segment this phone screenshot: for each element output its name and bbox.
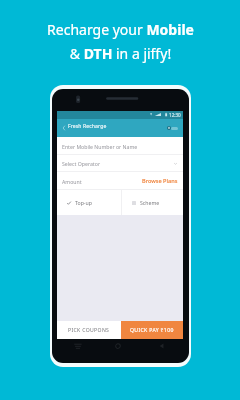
staticText: Scheme bbox=[140, 199, 160, 206]
button[interactable]: Pick contact bbox=[167, 126, 178, 130]
staticText: QUICK PAY ₹100 bbox=[130, 327, 174, 334]
staticText: Browse Plans bbox=[142, 177, 178, 185]
button[interactable]: QUICK PAY ₹100 bbox=[121, 321, 183, 339]
button[interactable]: PICK COUPONS bbox=[57, 321, 121, 339]
staticText: Enter Mobile Number or Name bbox=[62, 143, 138, 150]
staticText: Select Operator bbox=[62, 160, 101, 167]
button[interactable]: Scheme bbox=[122, 190, 183, 215]
staticText: Top-up bbox=[75, 199, 92, 206]
button[interactable]: Top-up bbox=[57, 190, 121, 215]
staticText: 12:30 bbox=[169, 112, 181, 118]
button[interactable]: Enter Mobile Number or Name bbox=[57, 137, 183, 155]
staticText: Fresh Recharge bbox=[68, 123, 107, 130]
staticText: Recharge your Mobile & DTH in a jiffy! bbox=[47, 20, 194, 63]
button[interactable]: Back bbox=[61, 122, 67, 134]
staticText: Amount bbox=[62, 178, 82, 185]
staticText: PICK COUPONS bbox=[68, 327, 110, 334]
button[interactable]: Select Operator bbox=[57, 155, 183, 172]
button[interactable]: Browse Plans bbox=[142, 177, 178, 185]
